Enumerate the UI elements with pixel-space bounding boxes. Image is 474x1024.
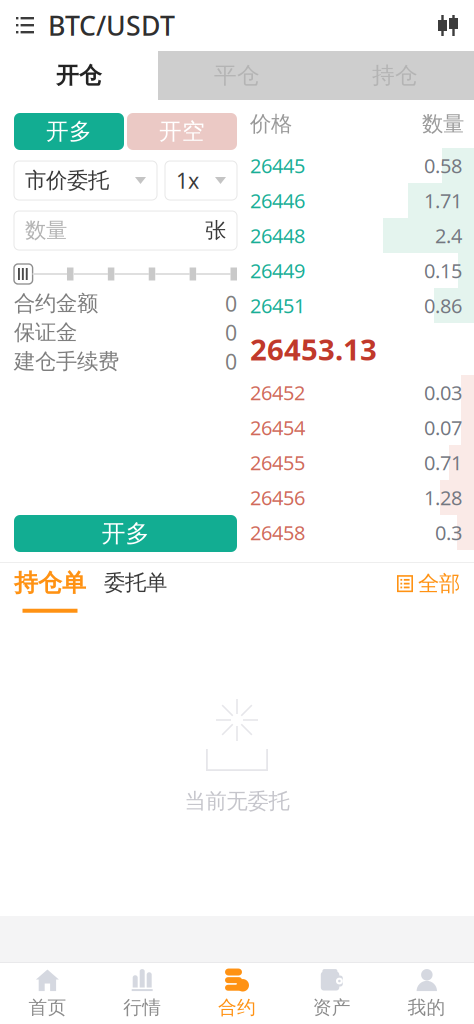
button[interactable]: 平仓 <box>158 51 316 100</box>
button[interactable]: 开多 <box>14 515 237 552</box>
staticText: 委托单 <box>104 569 167 596</box>
staticText: 数量 <box>25 217 67 244</box>
staticText: 全部 <box>418 570 460 597</box>
button[interactable]: 开空 <box>127 113 237 150</box>
staticText: 26448 <box>250 222 305 249</box>
button[interactable]: 全部 <box>397 570 460 626</box>
staticText: 26458 <box>250 519 305 546</box>
staticText: 0.15 <box>424 257 462 284</box>
staticText: 资产 <box>313 996 351 1019</box>
button[interactable]: 开仓 <box>0 51 158 100</box>
staticText: 26446 <box>250 187 305 214</box>
button[interactable]: 合约 <box>190 958 284 1024</box>
staticText: 26453.13 <box>250 329 377 368</box>
staticText: 0 <box>225 318 237 347</box>
button[interactable]: 委托单 <box>86 569 167 626</box>
staticText: 建仓手续费 <box>14 348 119 375</box>
staticText: 26449 <box>250 257 305 284</box>
staticText: 0.86 <box>424 292 462 319</box>
staticText: 首页 <box>28 996 66 1019</box>
staticText: 开仓 <box>56 62 102 89</box>
staticText: 开空 <box>159 118 205 145</box>
button[interactable]: 行情 <box>95 958 190 1024</box>
staticText: 1.71 <box>424 187 462 214</box>
staticText: 0.71 <box>424 449 462 476</box>
staticText: 0.07 <box>424 414 462 441</box>
staticText: 当前无委托 <box>184 788 289 814</box>
staticText: 行情 <box>123 996 161 1019</box>
staticText: 我的 <box>408 996 446 1019</box>
staticText: 26451 <box>250 292 305 319</box>
staticText: 张 <box>205 217 226 244</box>
button[interactable]: 资产 <box>284 958 379 1024</box>
staticText: 26454 <box>250 414 305 441</box>
staticText: 1x <box>176 166 199 195</box>
staticText: 平仓 <box>214 62 260 89</box>
staticText: 数量 <box>422 111 464 137</box>
staticText: 市价委托 <box>25 167 109 194</box>
staticText: 保证金 <box>14 319 77 346</box>
button[interactable]: 我的 <box>379 958 474 1024</box>
staticText: 0.3 <box>435 519 462 546</box>
button[interactable]: 开多 <box>14 113 124 150</box>
staticText: BTC/USDT <box>48 8 175 43</box>
button[interactable]: Menu <box>12 4 38 47</box>
staticText: 持仓单 <box>14 568 86 598</box>
staticText: 1.28 <box>424 484 462 511</box>
staticText: 0.03 <box>424 379 462 406</box>
staticText: 26452 <box>250 379 305 406</box>
staticText: 26445 <box>250 152 305 179</box>
staticText: 持仓 <box>372 62 418 89</box>
staticText: 0 <box>225 347 237 376</box>
staticText: 0 <box>225 289 237 318</box>
button[interactable]: Chart <box>434 4 462 47</box>
staticText: 价格 <box>250 111 292 137</box>
staticText: 开多 <box>46 118 92 145</box>
staticText: 26455 <box>250 449 305 476</box>
button[interactable]: 持仓单 <box>14 565 86 626</box>
staticText: 开多 <box>101 519 149 548</box>
button[interactable]: 首页 <box>0 958 95 1024</box>
staticText: 2.4 <box>435 222 462 249</box>
staticText: 合约金额 <box>14 290 98 317</box>
staticText: 合约 <box>218 996 256 1019</box>
button[interactable]: 持仓 <box>316 51 474 100</box>
staticText: 0.58 <box>424 152 462 179</box>
staticText: 26456 <box>250 484 305 511</box>
